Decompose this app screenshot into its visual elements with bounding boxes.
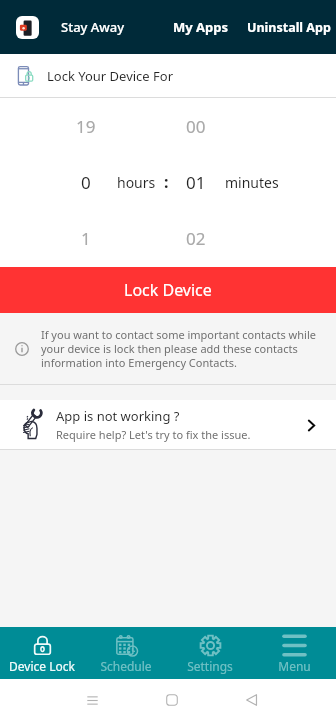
- staticText: minutes: [225, 173, 279, 192]
- button[interactable]: Lock Device: [0, 267, 336, 313]
- staticText: If you want to contact some important co…: [41, 327, 336, 370]
- button[interactable]: Uninstall App: [243, 9, 335, 46]
- button[interactable]: Device Lock: [0, 627, 84, 679]
- button[interactable]: My Apps: [169, 8, 233, 46]
- staticText: Stay Away: [61, 18, 125, 36]
- staticText: hours: [117, 173, 156, 192]
- button[interactable]: 1: [0, 226, 336, 250]
- staticText: :: [164, 171, 169, 193]
- staticText: 1: [81, 227, 91, 250]
- staticText: 02: [186, 227, 206, 250]
- staticText: Menu: [278, 658, 311, 674]
- button[interactable]: Schedule: [84, 627, 168, 679]
- staticText: Lock Device: [124, 279, 212, 301]
- staticText: 0: [81, 171, 91, 194]
- staticText: Uninstall App: [247, 19, 331, 36]
- staticText: 00: [186, 115, 206, 138]
- button[interactable]: Menu: [252, 627, 336, 679]
- staticText: Schedule: [100, 658, 152, 674]
- button[interactable]: 0: [0, 170, 336, 194]
- button[interactable]: App is not working ?: [0, 400, 336, 449]
- staticText: My Apps: [173, 18, 229, 36]
- staticText: Settings: [187, 658, 233, 674]
- button[interactable]: Stay Away app icon: [16, 16, 39, 39]
- staticText: Lock Your Device For: [47, 67, 174, 85]
- staticText: 01: [186, 171, 206, 194]
- staticText: Require help? Let's try to fix the issue…: [56, 427, 251, 442]
- button[interactable]: Home: [152, 680, 192, 720]
- button[interactable]: 19: [0, 114, 336, 138]
- button[interactable]: Settings: [168, 627, 252, 679]
- other: Open help: [299, 413, 323, 437]
- button[interactable]: Recent apps: [72, 680, 112, 720]
- staticText: 19: [76, 115, 96, 138]
- button[interactable]: Back: [232, 680, 272, 720]
- staticText: Device Lock: [9, 658, 75, 674]
- staticText: App is not working ?: [56, 407, 180, 425]
